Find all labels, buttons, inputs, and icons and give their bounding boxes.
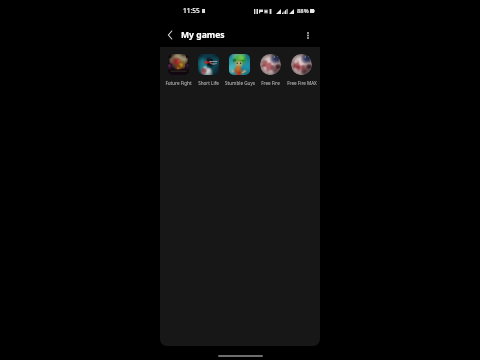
- staticText: Free Fire MAX: [287, 80, 317, 86]
- button[interactable]: Free Fire MAX: [286, 54, 317, 86]
- staticText: Free Fire: [261, 80, 280, 86]
- staticText: My games: [181, 29, 225, 41]
- staticText: 88%: [297, 7, 309, 15]
- button[interactable]: More options: [299, 26, 317, 44]
- button[interactable]: Back: [161, 26, 179, 44]
- staticText: Stumble Guys: [225, 80, 255, 86]
- button[interactable]: Future Fight: [163, 54, 193, 86]
- button[interactable]: Free Fire: [255, 54, 286, 86]
- button[interactable]: Stumble Guys: [224, 54, 255, 86]
- staticText: Short Life: [198, 80, 219, 86]
- button[interactable]: Short Life: [193, 54, 224, 86]
- staticText: Future Fight: [165, 80, 192, 86]
- staticText: 11:55: [183, 6, 200, 15]
